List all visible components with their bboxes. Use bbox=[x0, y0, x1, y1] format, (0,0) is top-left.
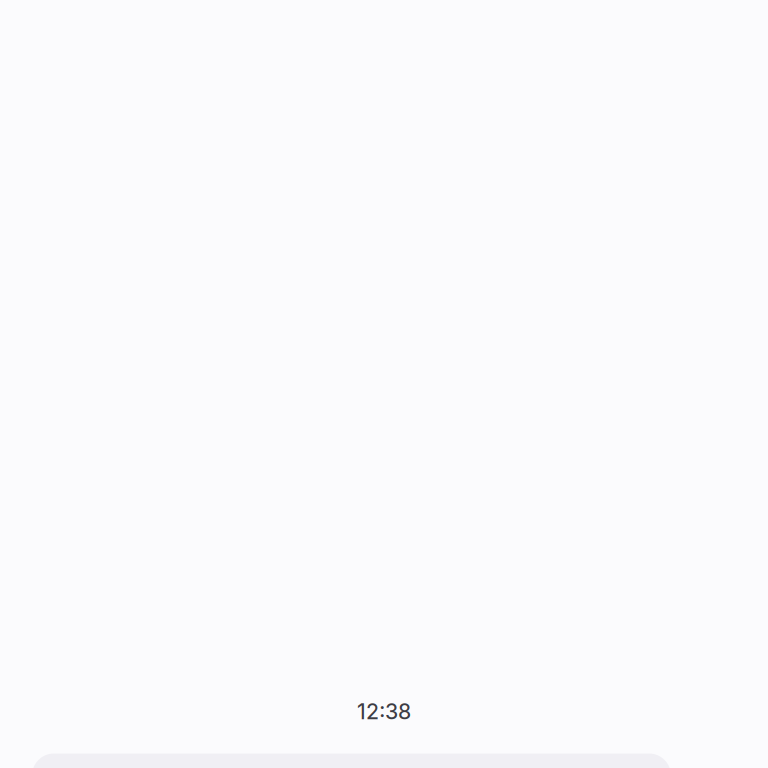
staticText: 12:38 bbox=[357, 699, 411, 724]
